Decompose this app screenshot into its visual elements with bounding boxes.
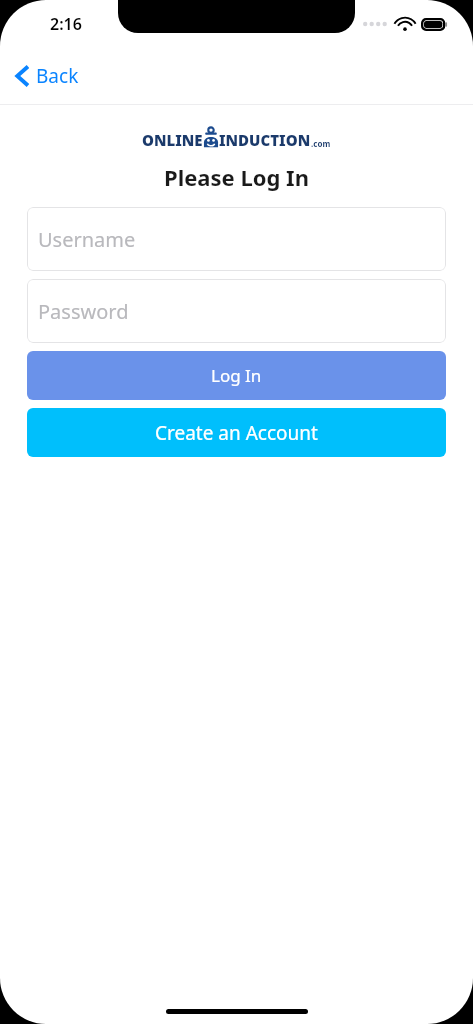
button[interactable]: Username <box>27 207 446 271</box>
staticText: Please Log In <box>0 162 473 192</box>
staticText: ONLINE <box>142 130 203 150</box>
staticText: Log In <box>211 364 262 387</box>
button[interactable]: Back <box>10 57 85 95</box>
button[interactable]: Log In <box>27 351 446 400</box>
staticText: Password <box>38 298 129 325</box>
staticText: Back <box>36 63 79 89</box>
button[interactable]: Create an Account <box>27 408 446 457</box>
staticText: 2:16 <box>50 13 82 35</box>
other: Back <box>16 65 29 87</box>
staticText: .com <box>311 138 331 149</box>
staticText: Create an Account <box>155 420 318 446</box>
staticText: Username <box>38 226 136 253</box>
staticText: INDUCTION <box>219 130 311 150</box>
button[interactable]: Password <box>27 279 446 343</box>
